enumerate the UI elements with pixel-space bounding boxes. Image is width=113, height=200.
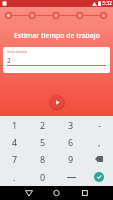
- staticText: 3: [68, 119, 74, 131]
- staticText: Estimar tiempo de trabajo: [14, 31, 100, 40]
- staticText: 9: [68, 153, 74, 165]
- staticText: 2: [7, 56, 11, 65]
- button[interactable]: -: [85, 116, 113, 133]
- staticText: 5: [40, 136, 46, 148]
- staticText: -: [98, 119, 101, 131]
- button[interactable]: Done: [94, 172, 104, 182]
- button[interactable]: .: [0, 168, 29, 186]
- button[interactable]: 2: [29, 116, 57, 133]
- staticText: 7: [12, 153, 18, 165]
- staticText: 4: [12, 136, 18, 148]
- button[interactable]: Horas estimadas: [3, 47, 110, 73]
- staticText: 6: [68, 136, 74, 148]
- button[interactable]: 3: [57, 116, 85, 133]
- button[interactable]: 6: [57, 133, 85, 150]
- staticText: 1: [12, 119, 18, 131]
- staticText: 2: [40, 119, 46, 131]
- button[interactable]: Backspace: [85, 150, 113, 168]
- button[interactable]: 4: [0, 133, 29, 150]
- button[interactable]: Start timer: [50, 95, 64, 109]
- button[interactable]: [57, 168, 85, 186]
- button[interactable]: 1: [0, 116, 29, 133]
- staticText: 3:32: [102, 0, 112, 7]
- button[interactable]: 8: [29, 150, 57, 168]
- button[interactable]: ,: [85, 133, 113, 150]
- other: Backspace: [95, 156, 103, 162]
- button[interactable]: 5: [29, 133, 57, 150]
- button[interactable]: 7: [0, 150, 29, 168]
- staticText: ,: [98, 136, 101, 148]
- staticText: .: [13, 171, 16, 183]
- button[interactable]: Done: [85, 168, 113, 186]
- staticText: 8: [40, 153, 46, 165]
- button[interactable]: 0: [29, 168, 57, 186]
- staticText: 0: [40, 171, 46, 183]
- button[interactable]: 9: [57, 150, 85, 168]
- staticText: Horas estimadas: [7, 50, 28, 54]
